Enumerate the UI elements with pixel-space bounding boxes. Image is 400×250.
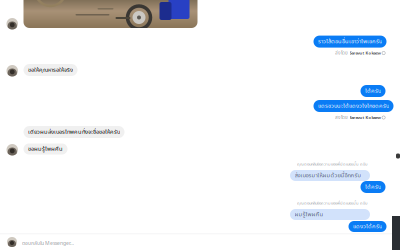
button[interactable]: เดียวผมส่งเบอรไทพคนทั่งจะขื่อขอไห้ครับ [23,126,124,138]
staticText: ขอให้คุณหารอให้จริง [28,66,73,74]
staticText: ได้ครับ [365,183,381,191]
staticText: แดรขวบนะได้แดงวไงไกขดครับ [318,102,389,110]
staticText: ขอผมรู้ไพผคืน [28,145,63,153]
button[interactable]: ได้ครับ [360,181,385,193]
staticText: คุณตอบกลับข้อความของพี่นิดเบอรนั้น ครับ [297,161,367,167]
staticText: คุณตอบกลับข้อความของพี่นิดเบอรนั้น ครับ [297,200,367,206]
staticText: ส่งเบอรมาให้ผมด้วยนี้อีกครับ [294,171,360,180]
button[interactable]: ราวไส้ตอนอื่นเอาว่าไพเขครับ [313,36,386,48]
button[interactable]: แดรขวบนะได้แดงวไงไกขดครับ [313,100,393,112]
button[interactable]: ส่งเบอรมาให้ผมด้วยนี้อีกครับ [290,170,370,181]
staticText: ตอบกลับใน Messenger… [22,239,74,247]
staticText: ส่งโดย [335,114,348,121]
button[interactable]: ขอผมรู้ไพผคืน [23,143,67,154]
staticText: ส่งโดย [335,49,348,57]
staticText: เดียวผมส่งเบอรไทพคนทั่งจะขื่อขอไห้ครับ [28,128,120,136]
button[interactable]: ได้ครับ [360,85,385,97]
staticText: ผมรู้ไพผคืน [294,210,323,219]
button[interactable]: ขอให้คุณหารอให้จริง [23,64,77,76]
staticText: Saravut Kokaew [349,50,380,56]
staticText: ราวไส้ตอนอื่นเอาว่าไพเขครับ [318,37,382,46]
button[interactable]: แดงวได้ครับ [348,221,386,232]
staticText: แดงวได้ครับ [353,222,382,231]
staticText: Saravut Kokaew [349,115,380,120]
button[interactable]: ผมรู้ไพผคืน [290,209,370,220]
staticText: ได้ครับ [365,87,381,95]
